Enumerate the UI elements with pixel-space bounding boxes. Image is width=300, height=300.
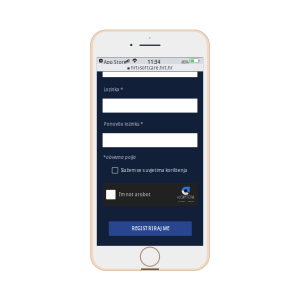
staticText: hrti-softcare.hrt.hr <box>131 65 173 71</box>
staticText: * obvezna polja <box>103 154 136 160</box>
staticText: Lozinka * <box>103 86 122 93</box>
button[interactable]: Slažem se s uvjetima korištenja <box>112 167 187 173</box>
staticText: reCAPTCHA <box>177 195 194 199</box>
staticText: 45% <box>181 59 189 65</box>
staticText: I'm not a robot <box>119 192 151 198</box>
button[interactable]: REGISTRIRAJ ME <box>109 221 192 236</box>
staticText: REGISTRIRAJ ME <box>132 226 169 232</box>
staticText: Privacy - Terms <box>178 199 194 203</box>
staticText: App Store <box>104 59 127 65</box>
staticText: Ponovite lozinku * <box>103 121 142 127</box>
staticText: 11:34 <box>147 59 160 65</box>
staticText: Slažem se s uvjetima korištenja <box>120 167 187 173</box>
button[interactable]: I'm not a robot <box>103 183 198 206</box>
